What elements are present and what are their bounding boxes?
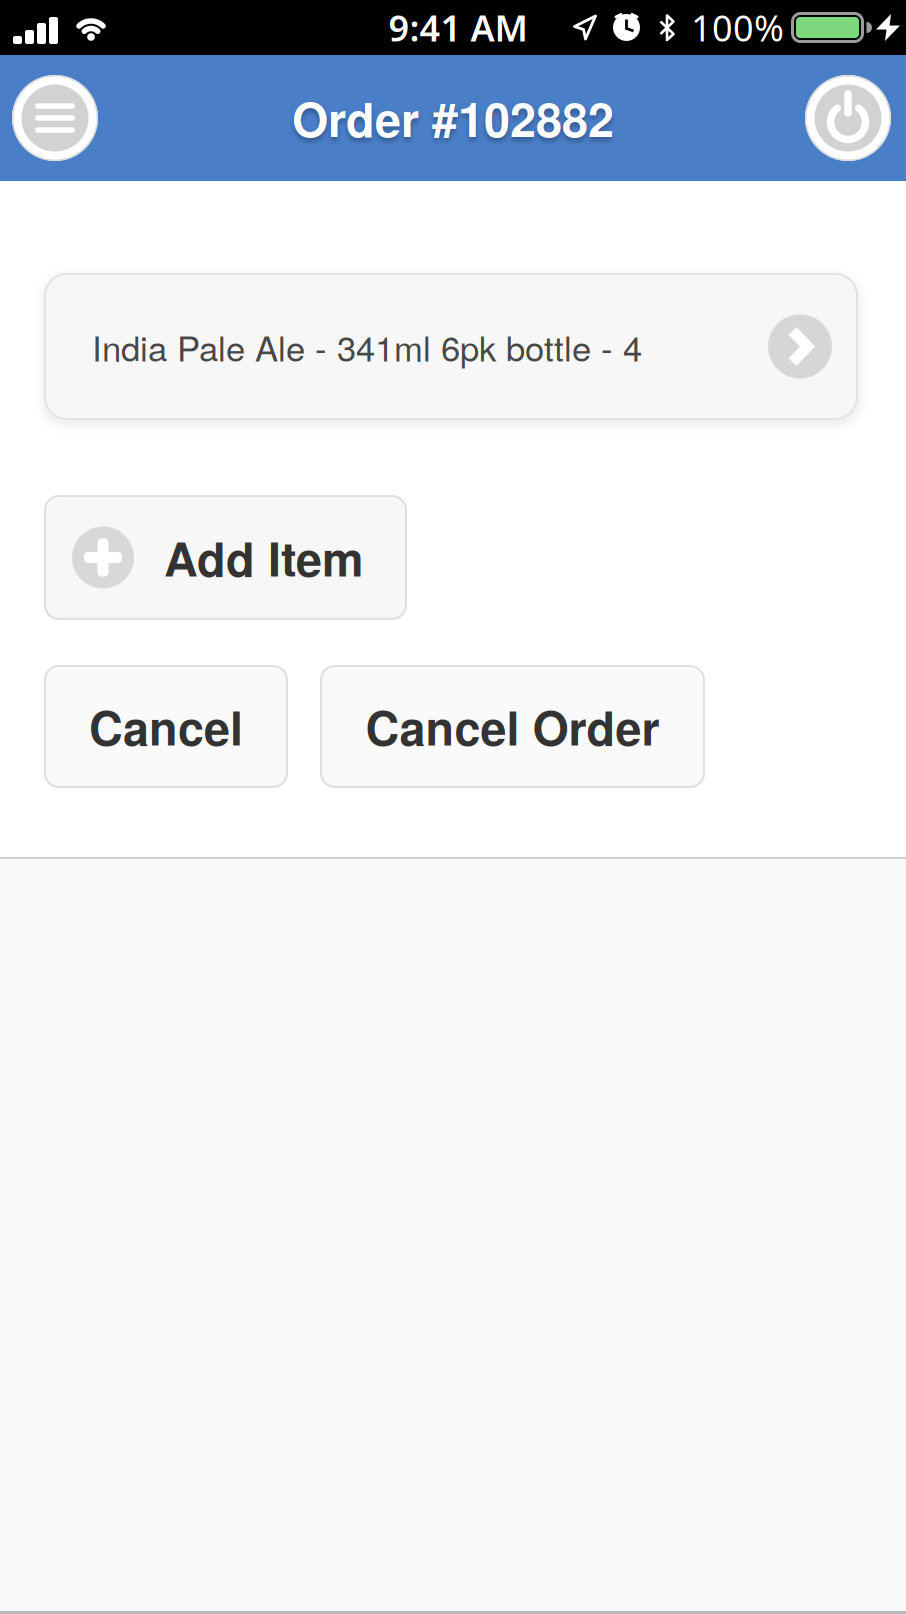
staticText: Cancel Order bbox=[365, 693, 659, 760]
staticText: 9:41 AM bbox=[388, 4, 527, 51]
staticText: Cancel bbox=[89, 693, 243, 760]
staticText: India Pale Ale - 341ml 6pk bottle - 4 bbox=[92, 322, 642, 371]
staticText: 100% bbox=[691, 4, 784, 51]
button[interactable]: Add Item bbox=[44, 495, 407, 620]
button[interactable]: Cancel bbox=[44, 665, 288, 788]
button[interactable] bbox=[12, 75, 98, 161]
staticText: Order #102882 bbox=[292, 85, 614, 151]
button[interactable]: India Pale Ale - 341ml 6pk bottle - 4 bbox=[44, 273, 858, 420]
button[interactable] bbox=[805, 75, 891, 161]
staticText: Add Item bbox=[164, 524, 363, 591]
button[interactable]: Cancel Order bbox=[320, 665, 705, 788]
